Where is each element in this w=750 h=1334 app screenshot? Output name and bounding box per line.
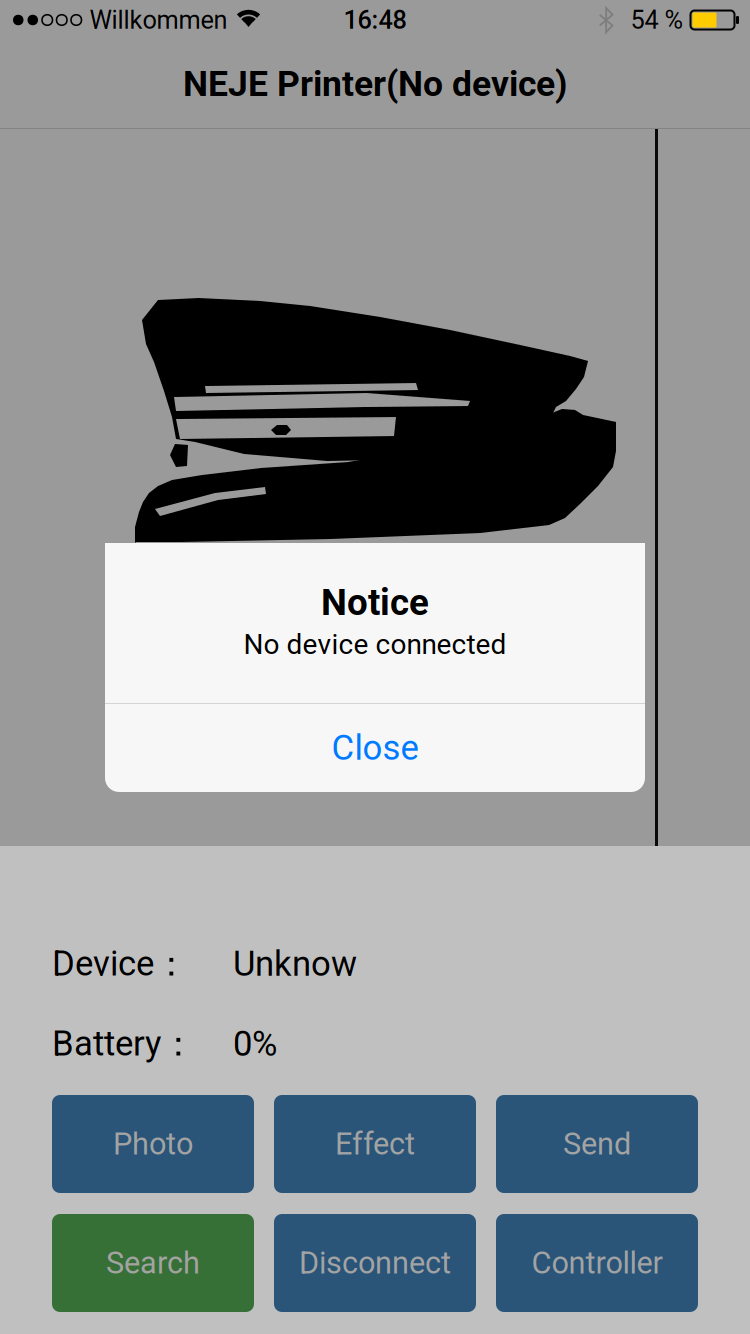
- staticText: Unknow: [233, 944, 357, 984]
- button[interactable]: Disconnect: [274, 1214, 476, 1312]
- staticText: Device：: [52, 942, 189, 986]
- staticText: 0%: [233, 1024, 277, 1064]
- button[interactable]: Photo: [52, 1095, 254, 1193]
- staticText: Willkommen: [89, 5, 227, 35]
- staticText: Send: [563, 1126, 631, 1162]
- staticText: Battery：: [52, 1022, 196, 1066]
- staticText: Effect: [335, 1126, 415, 1162]
- staticText: Notice: [321, 581, 429, 624]
- button[interactable]: Effect: [274, 1095, 476, 1193]
- button[interactable]: Search: [52, 1214, 254, 1312]
- staticText: 16:48: [343, 5, 406, 35]
- staticText: Controller: [531, 1245, 662, 1281]
- staticText: NEJE Printer(No device): [183, 63, 567, 105]
- staticText: Close: [331, 728, 418, 768]
- button[interactable]: Close: [105, 704, 645, 792]
- staticText: Photo: [113, 1126, 193, 1162]
- staticText: No device connected: [243, 628, 506, 661]
- staticText: Search: [106, 1245, 200, 1281]
- button[interactable]: Controller: [496, 1214, 698, 1312]
- staticText: 54 %: [630, 5, 683, 35]
- staticText: Disconnect: [299, 1245, 451, 1281]
- button[interactable]: Send: [496, 1095, 698, 1193]
